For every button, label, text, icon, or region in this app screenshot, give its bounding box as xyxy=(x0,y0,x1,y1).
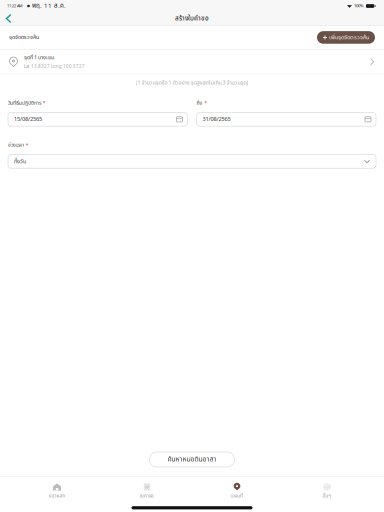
staticText: สร้างใบคำขอ xyxy=(175,14,209,23)
staticText: 15/08/2565 xyxy=(14,115,42,124)
staticText: จุดจัดตรวจค้น xyxy=(9,33,39,41)
button[interactable]: Back xyxy=(0,12,17,25)
staticText: * xyxy=(204,99,207,107)
staticText: ทั้งวัน xyxy=(14,157,26,166)
staticText: หน้าหลัก xyxy=(48,493,65,500)
staticText: อื่นๆ xyxy=(322,493,331,500)
staticText: ใบคำขอ xyxy=(140,493,154,500)
staticText: แผนที่ xyxy=(231,493,243,500)
staticText: ค้นหาหมอดินอาสา xyxy=(167,454,216,465)
button[interactable]: 31/08/2565 xyxy=(196,113,376,126)
staticText: พฤ. 11 ส.ค. xyxy=(32,1,66,11)
staticText: 11:22 AM xyxy=(7,3,23,9)
button[interactable]: 15/08/2565 xyxy=(8,113,187,126)
staticText: จุดที่ 1 บางเขน xyxy=(24,54,54,62)
staticText: 31/08/2565 xyxy=(202,115,230,124)
button[interactable]: ค้นหาหมอดินอาสา xyxy=(149,452,234,467)
button[interactable]: เพิ่มจุดจัดตรวจค้น xyxy=(317,31,375,44)
button[interactable]: หน้าหลัก xyxy=(12,483,102,500)
button[interactable]: ใบคำขอ xyxy=(102,483,192,500)
staticText: เพิ่มจุดจัดตรวจค้น xyxy=(329,33,369,42)
button[interactable]: จุดที่ 1 บางเขน xyxy=(0,50,384,74)
staticText: ช่วงเวลา xyxy=(8,141,24,149)
staticText: * xyxy=(42,99,45,107)
staticText: Lat 13.8327 Long 100.5727 xyxy=(24,63,85,70)
staticText: วันที่เริ่มปฏิบัติการ xyxy=(8,99,41,107)
staticText: (1 จำนวนจุดข้อ 1 ตัวอย่าง จุดสูงสุดไม่เก… xyxy=(135,79,248,87)
button[interactable]: แผนที่ xyxy=(192,483,282,500)
staticText: 100% xyxy=(354,3,364,9)
staticText: ถึง xyxy=(196,99,202,107)
staticText: * xyxy=(25,141,28,149)
button[interactable]: อื่นๆ xyxy=(282,483,372,500)
button[interactable]: ทั้งวัน xyxy=(8,155,376,168)
